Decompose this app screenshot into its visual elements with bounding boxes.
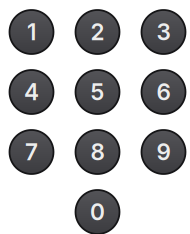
- staticText: 6: [156, 78, 170, 106]
- staticText: 0: [90, 198, 105, 226]
- button[interactable]: 6: [141, 70, 185, 114]
- button[interactable]: 2: [75, 10, 119, 54]
- staticText: 8: [90, 138, 104, 166]
- button[interactable]: 5: [75, 70, 119, 114]
- staticText: 4: [24, 78, 39, 106]
- button[interactable]: 3: [141, 10, 185, 54]
- staticText: 9: [156, 138, 170, 166]
- staticText: 1: [27, 18, 36, 46]
- button[interactable]: 0: [75, 190, 119, 234]
- button[interactable]: 7: [9, 130, 53, 174]
- staticText: 3: [156, 18, 170, 46]
- button[interactable]: 9: [141, 130, 185, 174]
- staticText: 2: [90, 18, 104, 46]
- button[interactable]: 1: [9, 10, 53, 54]
- staticText: 7: [25, 138, 38, 166]
- button[interactable]: 8: [75, 130, 119, 174]
- staticText: 5: [90, 78, 104, 106]
- button[interactable]: 4: [9, 70, 53, 114]
